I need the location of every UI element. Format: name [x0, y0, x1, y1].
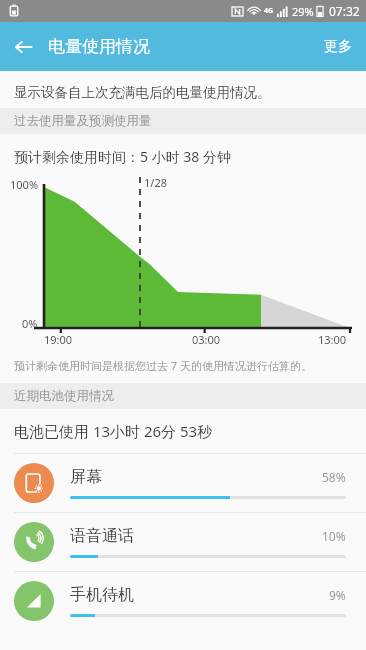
staticText: 29%: [292, 4, 314, 19]
staticText: 预计剩余使用时间：5 小时 38 分钟: [14, 147, 231, 166]
staticText: 预计剩余使用时间是根据您过去 7 天的使用情况进行估算的。: [14, 358, 313, 373]
staticText: 手机待机: [70, 585, 134, 605]
staticText: 58%: [322, 469, 346, 485]
staticText: 13:00: [318, 332, 347, 347]
staticText: 100%: [10, 177, 39, 192]
staticText: 过去使用量及预测使用量: [14, 113, 152, 129]
staticText: 9%: [329, 587, 346, 603]
staticText: 0%: [22, 316, 38, 331]
staticText: 10%: [322, 528, 346, 544]
staticText: 1/28: [144, 175, 167, 190]
button[interactable]: 更多: [310, 26, 366, 68]
staticText: 更多: [324, 38, 352, 56]
staticText: 电池已使用 13小时 26分 53秒: [14, 421, 213, 441]
button[interactable]: 屏幕: [0, 454, 366, 512]
staticText: 电量使用情况: [48, 36, 150, 57]
button[interactable]: 语音通话: [0, 513, 366, 571]
staticText: 03:00: [192, 332, 221, 347]
staticText: 近期电池使用情况: [14, 388, 114, 404]
staticText: 07:32: [329, 3, 360, 19]
staticText: 19:00: [44, 332, 73, 347]
staticText: 屏幕: [70, 467, 102, 487]
staticText: 语音通话: [70, 526, 134, 546]
staticText: 显示设备自上次充满电后的电量使用情况。: [14, 84, 271, 101]
staticText: 4G: [264, 6, 274, 16]
button[interactable]: 返回: [4, 27, 44, 67]
button[interactable]: 手机待机: [0, 572, 366, 630]
